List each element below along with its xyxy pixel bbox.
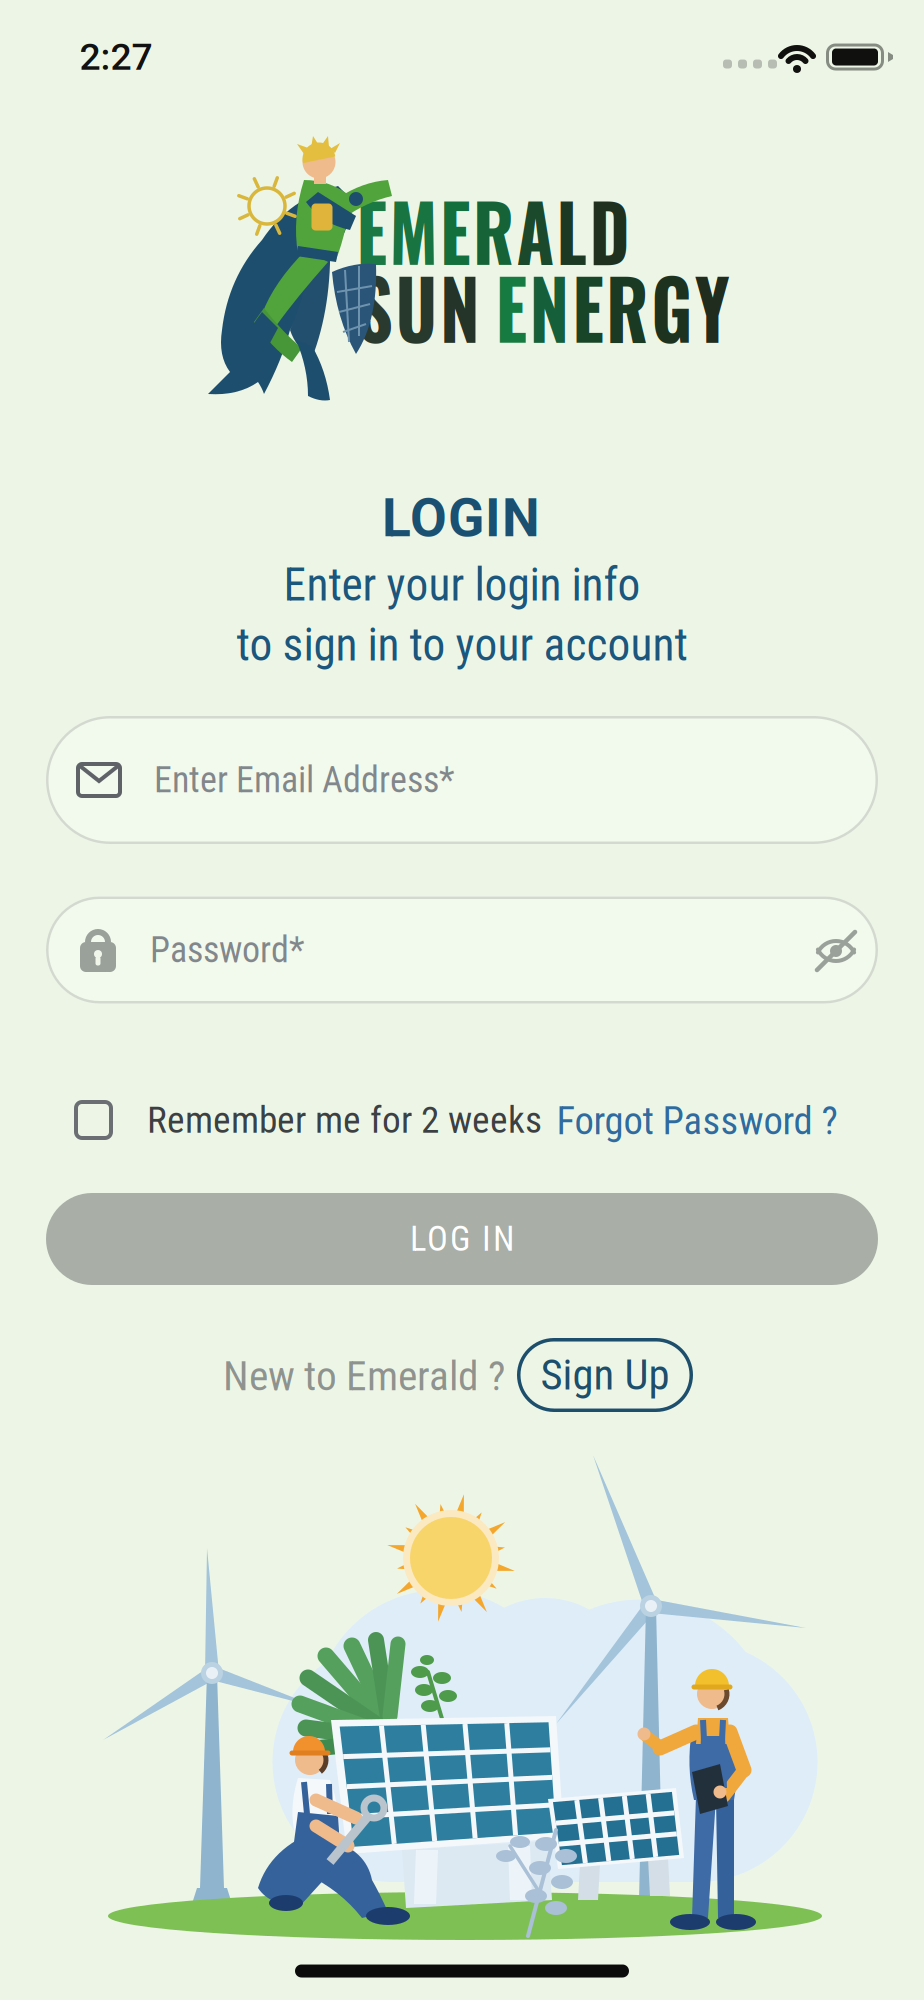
staticText: LOG IN xyxy=(410,1219,514,1259)
staticText: E xyxy=(336,171,371,287)
staticText: LOGIN xyxy=(382,487,540,549)
staticText: S xyxy=(328,246,370,366)
button[interactable]: Enter Email Address* xyxy=(46,716,878,844)
staticText: Remember me for 2 weeks xyxy=(147,1098,542,1142)
staticText: E xyxy=(576,246,612,366)
staticText: G xyxy=(667,246,714,366)
staticText: M xyxy=(374,171,429,287)
staticText: to sign in to your account xyxy=(236,618,687,671)
staticText: E xyxy=(432,171,467,287)
staticText: Enter Email Address* xyxy=(154,759,455,801)
staticText: N xyxy=(527,246,573,366)
button[interactable]: Remember me for 2 weeks xyxy=(74,1098,542,1142)
button[interactable]: Forgot Password ? xyxy=(556,1098,837,1144)
button[interactable]: Show password xyxy=(809,927,863,975)
staticText: D xyxy=(604,171,650,287)
staticText: E xyxy=(488,246,524,366)
staticText: R xyxy=(615,246,664,366)
button[interactable]: Sign Up xyxy=(517,1338,693,1412)
staticText: Y xyxy=(717,246,757,366)
staticText: Sign Up xyxy=(540,1350,669,1400)
staticText: U xyxy=(373,246,421,366)
staticText: 2:27 xyxy=(79,35,152,79)
staticText: Forgot Password ? xyxy=(556,1098,837,1144)
staticText: New to Emerald ? xyxy=(223,1352,505,1400)
staticText: R xyxy=(470,171,517,287)
button[interactable]: LOG IN xyxy=(46,1193,878,1285)
button[interactable]: Password* xyxy=(46,896,878,1003)
staticText: Enter your login info xyxy=(283,558,640,611)
staticText: N xyxy=(424,246,470,366)
staticText: Password* xyxy=(150,929,305,971)
staticText: L xyxy=(566,171,601,287)
staticText: A xyxy=(520,171,563,287)
